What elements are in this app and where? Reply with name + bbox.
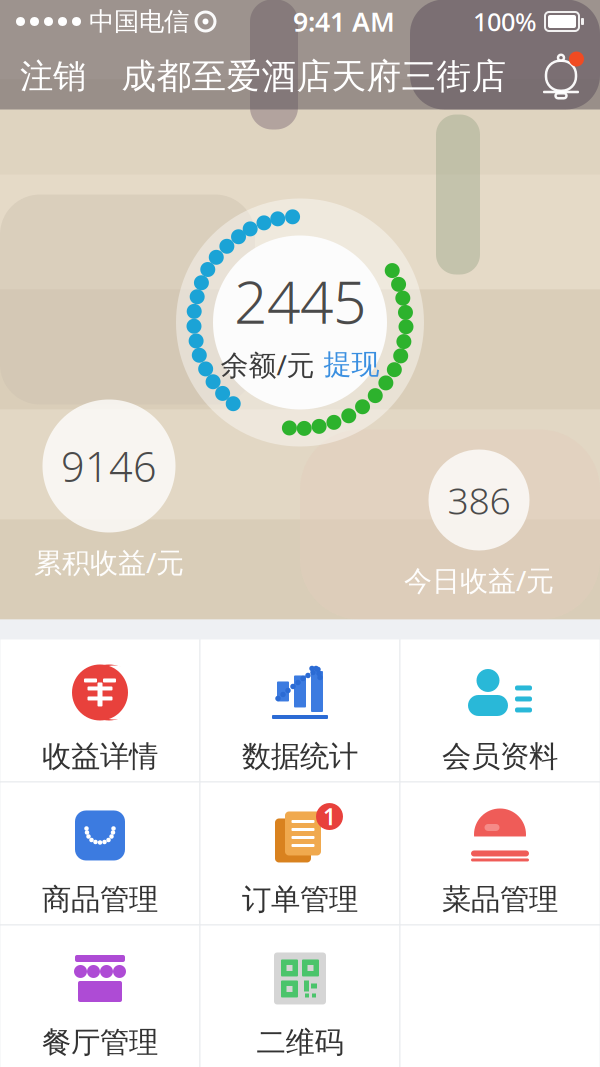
staticText: 1	[323, 801, 336, 832]
button[interactable]: 餐厅管理	[0, 925, 199, 1067]
staticText: 累积收益/元	[34, 543, 184, 581]
staticText: 注销	[20, 56, 86, 97]
staticText: 收益详情	[42, 738, 158, 774]
staticText: 100%	[473, 5, 537, 38]
button[interactable]: 商品管理	[0, 782, 199, 924]
staticText: 菜品管理	[442, 881, 558, 917]
staticText: 2445	[234, 262, 366, 340]
staticText: 9146	[61, 439, 157, 493]
staticText: 订单管理	[242, 881, 358, 917]
staticText: 数据统计	[242, 738, 358, 774]
staticText: 二维码	[256, 1024, 343, 1060]
button[interactable]: 二维码	[200, 925, 399, 1067]
button[interactable]: 1	[200, 782, 399, 924]
staticText: 会员资料	[442, 738, 558, 774]
staticText: 今日收益/元	[404, 561, 554, 599]
button[interactable]: 提现	[323, 347, 379, 382]
button[interactable]: 注销	[0, 42, 106, 111]
button[interactable]: Notifications	[522, 43, 600, 109]
button[interactable]: 数据统计	[200, 639, 399, 781]
button[interactable]: 菜品管理	[400, 782, 599, 924]
staticText: 386	[447, 475, 510, 525]
button[interactable]: 会员资料	[400, 639, 599, 781]
staticText: 余额/元	[220, 346, 314, 383]
staticText: 成都至爱酒店天府三街店	[121, 55, 506, 98]
button[interactable]: 收益详情	[0, 639, 199, 781]
staticText: 餐厅管理	[42, 1024, 158, 1060]
staticText: 中国电信	[89, 6, 189, 37]
staticText: 9:41 AM	[293, 4, 395, 39]
staticText: 提现	[323, 347, 379, 382]
staticText: 商品管理	[42, 881, 158, 917]
